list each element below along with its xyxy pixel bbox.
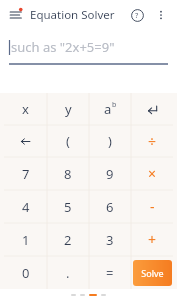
button[interactable]: a	[89, 93, 131, 125]
button[interactable]: 8	[47, 157, 89, 190]
button[interactable]: Backspace	[4, 125, 47, 157]
staticText: )	[108, 132, 112, 150]
button[interactable]: ÷	[131, 125, 173, 157]
button[interactable]: 5	[47, 190, 89, 223]
button[interactable]: x	[4, 93, 47, 125]
button[interactable]: +	[131, 223, 173, 256]
button[interactable]: 1	[4, 223, 47, 256]
button[interactable]: 6	[89, 190, 131, 223]
button[interactable]: Solve	[133, 260, 172, 286]
button[interactable]: 4	[4, 190, 47, 223]
staticText: Solve	[141, 267, 164, 279]
staticText: ÷	[148, 132, 157, 151]
button[interactable]: More options	[149, 3, 173, 27]
button[interactable]: 3	[89, 223, 131, 256]
staticText: y	[65, 100, 72, 118]
button[interactable]: )	[89, 125, 131, 157]
staticText: 6	[106, 198, 114, 216]
button[interactable]: 7	[4, 157, 47, 190]
staticText: 2	[64, 231, 72, 249]
staticText: such as "2x+5=9"	[11, 38, 115, 56]
button[interactable]: ×	[131, 157, 173, 190]
button[interactable]: 9	[89, 157, 131, 190]
staticText: a	[104, 100, 112, 118]
staticText: 9	[106, 165, 114, 183]
button[interactable]: 0	[4, 256, 47, 289]
staticText: ?	[135, 10, 139, 20]
button[interactable]: 2	[47, 223, 89, 256]
staticText: +	[148, 230, 157, 249]
button[interactable]: such as "2x+5=9"	[9, 29, 168, 65]
staticText: 3	[106, 231, 114, 249]
staticText: 7	[22, 165, 30, 183]
button[interactable]: Menu	[6, 4, 28, 26]
staticText: (	[66, 132, 70, 150]
staticText: 0	[22, 264, 30, 282]
staticText: .	[66, 264, 70, 282]
staticText: Equation Solver	[30, 7, 115, 23]
button[interactable]: y	[47, 93, 89, 125]
button[interactable]: Enter	[131, 93, 173, 125]
staticText: 8	[64, 165, 72, 183]
staticText: 5	[64, 198, 72, 216]
staticText: ×	[148, 164, 157, 183]
button[interactable]: -	[131, 190, 173, 223]
staticText: =	[106, 264, 114, 282]
staticText: x	[22, 100, 29, 118]
staticText: 4	[22, 198, 30, 216]
staticText: 1	[22, 231, 30, 249]
button[interactable]: Help	[125, 3, 149, 27]
button[interactable]: (	[47, 125, 89, 157]
button[interactable]: =	[89, 256, 131, 289]
button[interactable]: .	[47, 256, 89, 289]
staticText: b	[112, 100, 117, 110]
staticText: -	[150, 197, 155, 216]
